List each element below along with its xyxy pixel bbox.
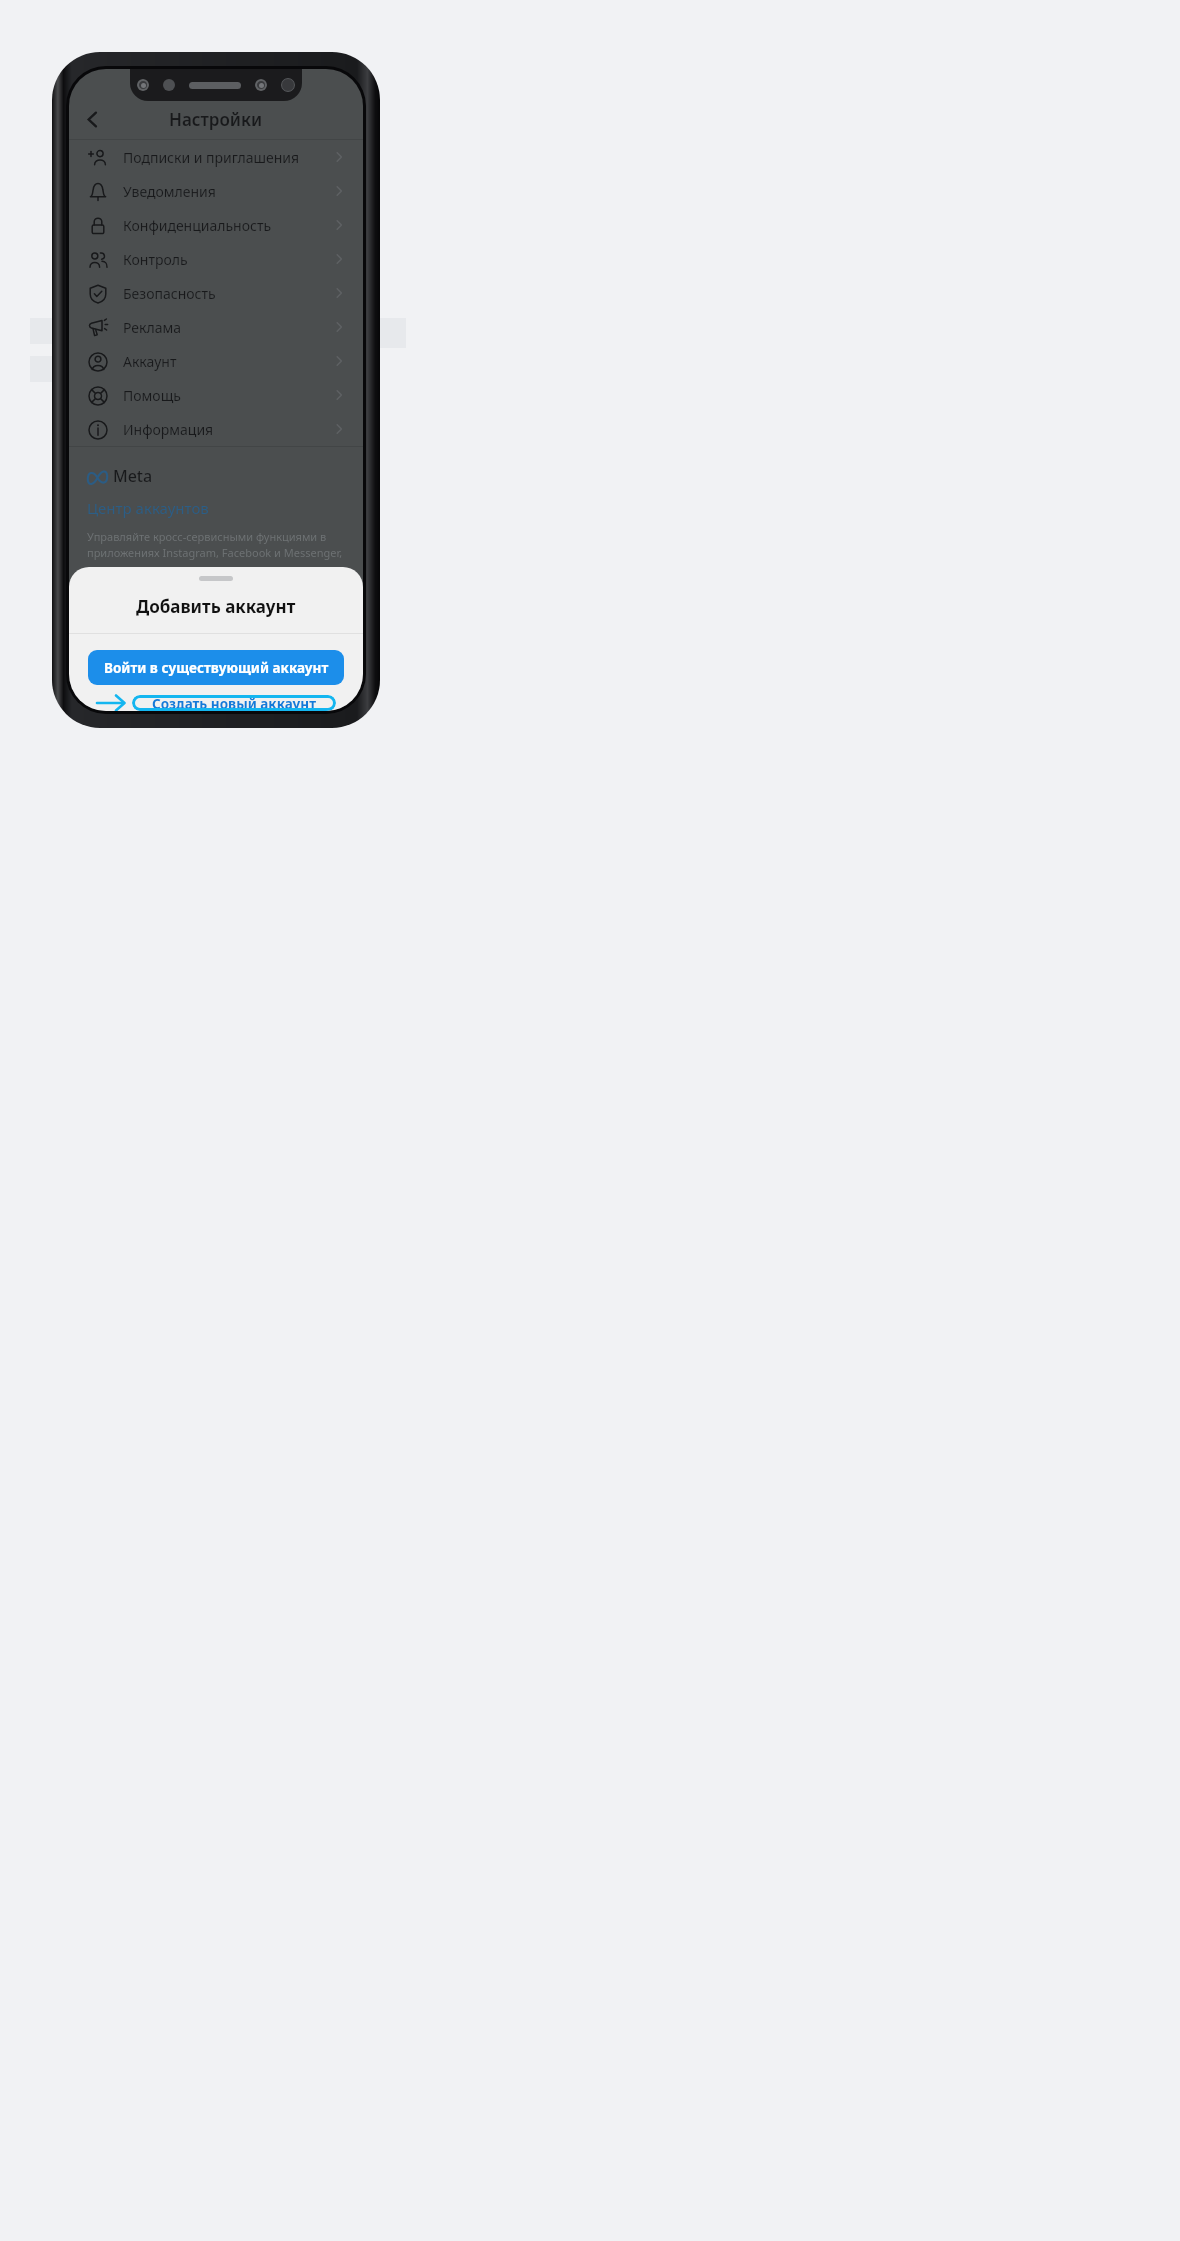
staticText: Конфиденциальность xyxy=(123,216,272,235)
staticText: Добавить аккаунт xyxy=(136,595,296,618)
button[interactable]: Подписки и приглашения xyxy=(69,140,363,174)
button[interactable]: Назад xyxy=(73,100,111,138)
staticText: Войти в существующий аккаунт xyxy=(104,659,329,677)
staticText: Аккаунт xyxy=(123,352,177,371)
button[interactable]: Контроль xyxy=(69,242,363,276)
staticText: Уведомления xyxy=(123,182,216,201)
staticText: Создать новый аккаунт xyxy=(152,695,316,711)
button[interactable]: Аккаунт xyxy=(69,344,363,378)
button[interactable]: Центр аккаунтов xyxy=(87,498,209,518)
staticText: Реклама xyxy=(123,318,182,337)
staticText: Meta xyxy=(113,465,153,487)
button[interactable]: Конфиденциальность xyxy=(69,208,363,242)
staticText: Подписки и приглашения xyxy=(123,148,300,167)
button[interactable]: Помощь xyxy=(69,378,363,412)
staticText: Контроль xyxy=(123,250,188,269)
staticText: Безопасность xyxy=(123,284,216,303)
staticText: Входы xyxy=(87,625,139,647)
button[interactable]: Уведомления xyxy=(69,174,363,208)
staticText: Настройки xyxy=(169,108,263,131)
button[interactable]: Войти в существующий аккаунт xyxy=(88,650,344,685)
button[interactable]: Реклама xyxy=(69,310,363,344)
staticText: Информация xyxy=(123,420,214,439)
staticText: Помощь xyxy=(123,386,181,405)
button[interactable]: Информация xyxy=(69,412,363,446)
other: Стрелка xyxy=(96,695,126,711)
button[interactable]: Безопасность xyxy=(69,276,363,310)
button[interactable]: Создать новый аккаунт xyxy=(132,695,336,711)
staticText: Управляйте кросс-сервисными функциями в … xyxy=(87,529,345,592)
